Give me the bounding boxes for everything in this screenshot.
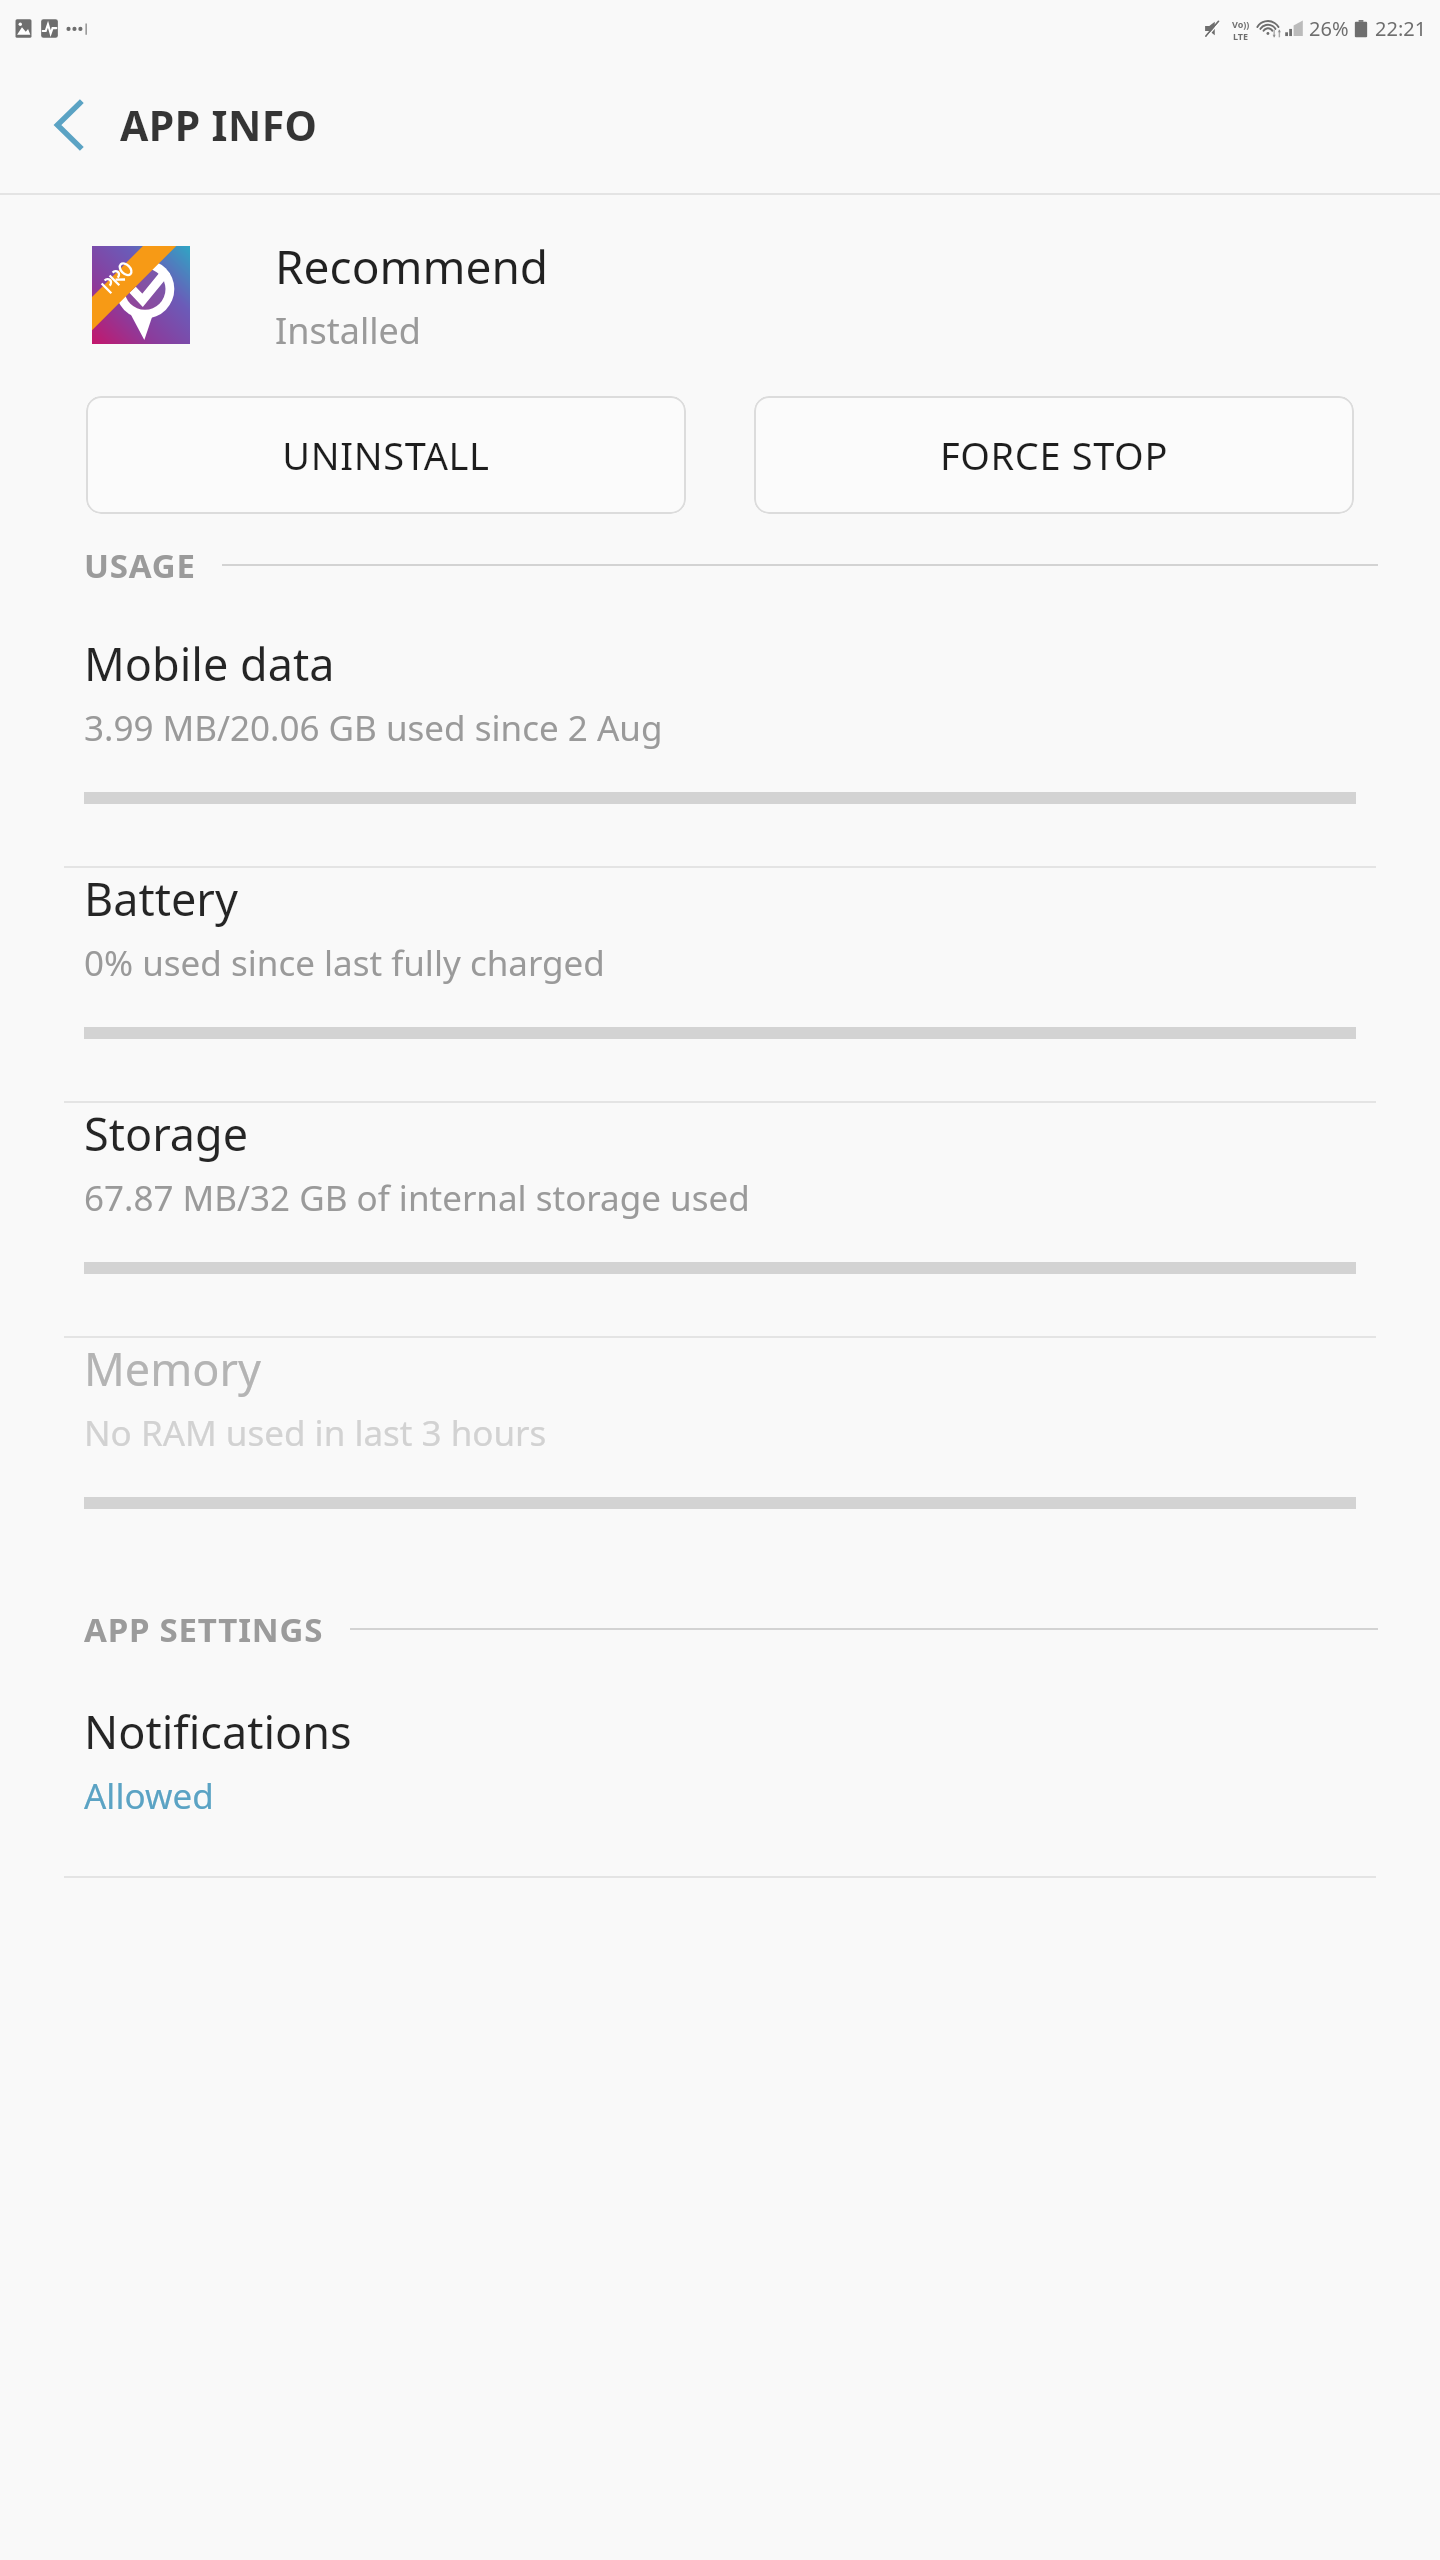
staticText: Notifications <box>84 1701 352 1762</box>
staticText: Installed <box>275 306 421 355</box>
staticText: FORCE STOP <box>940 429 1168 481</box>
button[interactable]: Mobile data <box>0 633 1440 866</box>
staticText: Recommend <box>275 235 549 298</box>
staticText: LTE <box>1233 30 1249 40</box>
staticText: APP INFO <box>120 97 318 153</box>
button[interactable]: Navigate up <box>38 94 100 156</box>
button[interactable]: Storage <box>0 1103 1440 1336</box>
staticText: 67.87 MB/32 GB of internal storage used <box>84 1174 750 1222</box>
staticText: UNINSTALL <box>282 429 490 481</box>
staticText: 22:21 <box>1375 15 1427 42</box>
staticText: No RAM used in last 3 hours <box>84 1409 547 1457</box>
button[interactable]: Notifications <box>0 1701 1440 1876</box>
staticText: Vo)) <box>1232 18 1250 30</box>
staticText: 26% <box>1309 15 1349 42</box>
button[interactable]: Memory <box>0 1338 1440 1571</box>
button[interactable]: FORCE STOP <box>754 396 1354 514</box>
staticText: 0% used since last fully charged <box>84 939 605 987</box>
staticText: Storage <box>84 1103 249 1164</box>
staticText: Mobile data <box>84 633 335 694</box>
staticText: APP SETTINGS <box>84 1607 324 1652</box>
staticText: Allowed <box>84 1772 214 1820</box>
button[interactable]: Battery <box>0 868 1440 1101</box>
staticText: Memory <box>84 1338 262 1399</box>
button[interactable]: UNINSTALL <box>86 396 686 514</box>
staticText: Battery <box>84 868 238 929</box>
staticText: USAGE <box>84 543 196 588</box>
staticText: 3.99 MB/20.06 GB used since 2 Aug <box>84 704 663 752</box>
